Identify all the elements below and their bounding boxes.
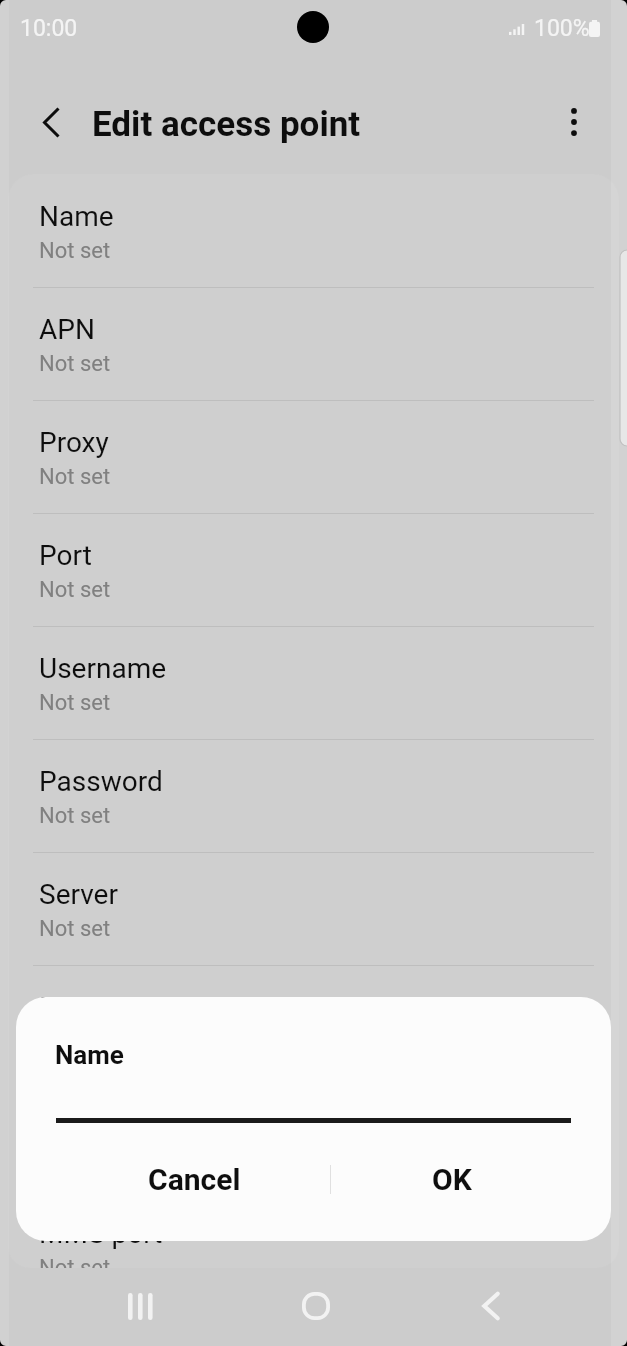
staticText: MMS port bbox=[39, 1217, 163, 1250]
button[interactable]: Back bbox=[455, 1270, 527, 1342]
button[interactable]: Recent apps bbox=[104, 1270, 176, 1342]
staticText: Cancel bbox=[148, 1162, 241, 1197]
button[interactable]: Home bbox=[280, 1270, 352, 1342]
staticText: Not set bbox=[39, 1255, 111, 1268]
staticText: 100% bbox=[534, 15, 590, 42]
button[interactable]: Server bbox=[8, 853, 619, 966]
staticText: Not set bbox=[39, 1029, 111, 1055]
button[interactable]: APN bbox=[8, 288, 619, 401]
staticText: Username bbox=[39, 652, 167, 685]
button[interactable]: Port bbox=[8, 514, 619, 627]
staticText: Not set bbox=[39, 464, 111, 490]
button[interactable]: MMS proxy bbox=[8, 1079, 619, 1192]
button[interactable]: MMSC bbox=[8, 966, 619, 1079]
staticText: Not set bbox=[39, 238, 111, 264]
button[interactable]: OK bbox=[330, 1141, 573, 1217]
staticText: Not set bbox=[39, 803, 111, 829]
button[interactable]: More options bbox=[552, 100, 596, 144]
staticText: Server bbox=[39, 878, 118, 911]
staticText: OK bbox=[432, 1162, 472, 1197]
staticText: Not set bbox=[39, 351, 111, 377]
staticText: 10:00 bbox=[20, 15, 78, 42]
staticText: Name bbox=[39, 200, 114, 233]
button[interactable]: Username bbox=[8, 627, 619, 740]
staticText: MMSC bbox=[39, 991, 123, 1024]
button[interactable]: Password bbox=[8, 740, 619, 853]
button[interactable]: Cancel bbox=[56, 1141, 332, 1217]
staticText: Port bbox=[39, 539, 92, 572]
staticText: Password bbox=[39, 765, 163, 798]
staticText: MMS proxy bbox=[39, 1104, 180, 1137]
staticText: Name bbox=[55, 1040, 124, 1070]
button[interactable]: Navigate up bbox=[29, 100, 73, 144]
staticText: APN bbox=[39, 313, 95, 346]
staticText: Not set bbox=[39, 916, 111, 942]
staticText: Proxy bbox=[39, 426, 109, 459]
button[interactable]: Name bbox=[8, 175, 619, 288]
button[interactable]: MMS port bbox=[8, 1192, 619, 1268]
staticText: Not set bbox=[39, 577, 111, 603]
staticText: Not set bbox=[39, 690, 111, 716]
staticText: Edit access point bbox=[92, 104, 361, 145]
button[interactable]: Proxy bbox=[8, 401, 619, 514]
